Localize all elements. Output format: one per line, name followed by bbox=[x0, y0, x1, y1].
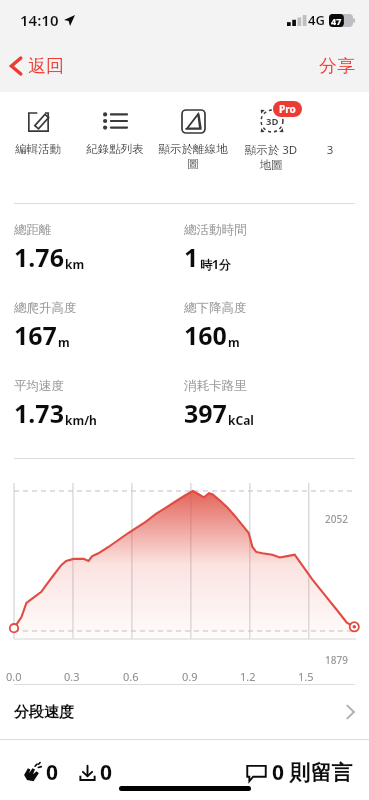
staticText: 顯示於 3D 地圖 bbox=[232, 142, 310, 173]
staticText: 397 bbox=[184, 396, 227, 430]
staticText: 分段速度 bbox=[14, 703, 74, 722]
button[interactable]: 分享 bbox=[305, 44, 369, 88]
staticText: 0 bbox=[46, 758, 59, 787]
staticText: 0.3 bbox=[64, 669, 80, 684]
button[interactable]: Download bbox=[77, 758, 113, 787]
button[interactable]: 顯示於離線地圖 bbox=[154, 93, 232, 193]
staticText: 分享 bbox=[319, 55, 355, 78]
staticText: 紀錄點列表 bbox=[76, 142, 154, 156]
staticText: 時1分 bbox=[200, 256, 231, 272]
staticText: 160 bbox=[184, 318, 227, 352]
staticText: Pro bbox=[279, 102, 296, 116]
button[interactable]: 3D bbox=[232, 93, 310, 193]
staticText: 0.9 bbox=[182, 669, 198, 684]
button[interactable]: 3 bbox=[310, 93, 350, 193]
staticText: 1879 bbox=[325, 653, 348, 667]
staticText: 1.76 bbox=[14, 240, 64, 274]
staticText: 3 bbox=[310, 142, 350, 158]
button[interactable]: 紀錄點列表 bbox=[76, 93, 154, 193]
staticText: m bbox=[228, 334, 240, 350]
button[interactable]: 0 則留言 bbox=[246, 758, 353, 787]
staticText: 0 bbox=[100, 758, 113, 787]
staticText: m bbox=[58, 334, 70, 350]
staticText: km bbox=[65, 256, 85, 272]
staticText: 平均速度 bbox=[14, 378, 64, 394]
staticText: 167 bbox=[14, 318, 57, 352]
staticText: 14:10 bbox=[20, 10, 59, 30]
staticText: 0 則留言 bbox=[272, 758, 353, 787]
staticText: 1.73 bbox=[14, 396, 64, 430]
staticText: 總下降高度 bbox=[184, 300, 247, 316]
staticText: 47 bbox=[331, 15, 342, 27]
staticText: kCal bbox=[228, 412, 254, 428]
staticText: 0.0 bbox=[6, 669, 22, 684]
button[interactable]: Clap bbox=[22, 758, 59, 787]
staticText: 總活動時間 bbox=[184, 222, 247, 238]
button[interactable]: 分段速度 bbox=[0, 685, 369, 739]
staticText: 消耗卡路里 bbox=[184, 378, 247, 394]
button[interactable]: 編輯活動 bbox=[0, 93, 76, 193]
staticText: km/h bbox=[65, 412, 97, 428]
staticText: 1.5 bbox=[298, 669, 314, 684]
staticText: 3D bbox=[266, 115, 279, 128]
staticText: 1 bbox=[184, 240, 199, 274]
staticText: 4G bbox=[308, 11, 325, 29]
staticText: 返回 bbox=[28, 55, 64, 78]
staticText: 顯示於離線地圖 bbox=[154, 142, 232, 172]
staticText: 1.2 bbox=[240, 669, 256, 684]
staticText: 總距離 bbox=[14, 222, 52, 238]
staticText: 0.6 bbox=[123, 669, 139, 684]
staticText: 總爬升高度 bbox=[14, 300, 77, 316]
staticText: 編輯活動 bbox=[0, 142, 76, 156]
button[interactable]: 返回 bbox=[0, 44, 74, 88]
staticText: 2052 bbox=[325, 512, 348, 526]
